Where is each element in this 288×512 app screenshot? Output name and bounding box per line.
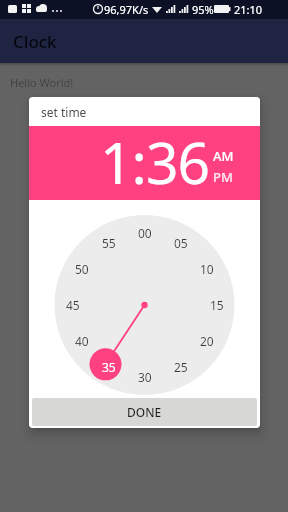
staticText: 10 (200, 261, 214, 277)
staticText: 20 (200, 333, 214, 349)
button[interactable]: 55 (95, 234, 123, 252)
staticText: set time (41, 104, 87, 120)
button[interactable]: 25 (167, 358, 195, 376)
staticText: 45 (66, 297, 80, 313)
staticText: 05 (174, 235, 188, 251)
button[interactable]: 45 (59, 296, 87, 314)
staticText: 15 (210, 297, 224, 313)
button[interactable]: 30 (131, 368, 159, 386)
button[interactable]: DONE (32, 398, 257, 426)
staticText: 00 (138, 225, 152, 241)
button[interactable]: 15 (203, 296, 231, 314)
staticText: Hello World! (10, 75, 74, 90)
staticText: 30 (138, 369, 152, 385)
staticText: Clock (13, 30, 57, 53)
staticText: 35 (102, 359, 116, 375)
staticText: DONE (127, 404, 162, 420)
staticText: 50 (75, 261, 89, 277)
button[interactable]: 20 (193, 332, 221, 350)
button[interactable]: AM (213, 147, 234, 165)
staticText: 55 (102, 235, 116, 251)
button[interactable]: 50 (68, 260, 96, 278)
staticText: 96,97K/s (104, 2, 149, 17)
staticText: 21:10 (234, 2, 263, 17)
staticText: 40 (75, 333, 89, 349)
staticText: 95% (192, 2, 214, 17)
button[interactable]: PM (213, 168, 233, 186)
staticText: 1:36 (100, 123, 210, 197)
button[interactable]: 40 (68, 332, 96, 350)
button[interactable]: 35 (95, 358, 123, 376)
button[interactable]: 00 (131, 224, 159, 242)
button[interactable]: 10 (193, 260, 221, 278)
staticText: 25 (174, 359, 188, 375)
button[interactable]: 05 (167, 234, 195, 252)
